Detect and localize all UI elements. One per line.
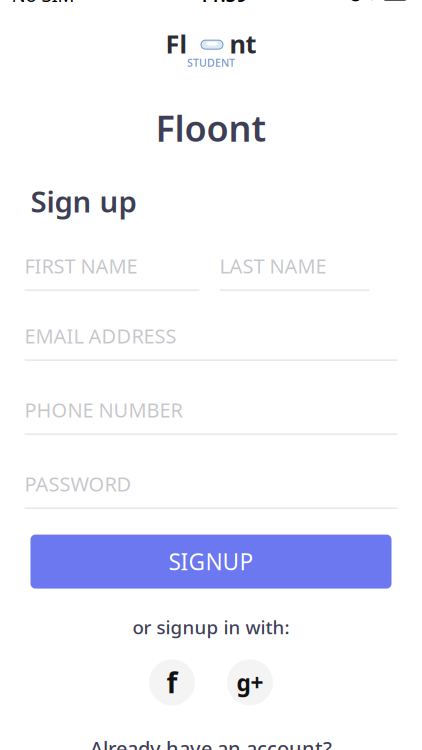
staticText: 11:59 [198, 0, 247, 7]
staticText: No SIM [11, 0, 74, 7]
staticText: Floont [155, 104, 266, 152]
staticText: PHONE NUMBER [24, 397, 182, 423]
staticText: f [166, 664, 177, 701]
staticText: EMAIL ADDRESS [24, 323, 176, 349]
staticText: PASSWORD [24, 471, 131, 497]
staticText: STUDENT [187, 56, 235, 70]
button[interactable]: SIGNUP [30, 535, 391, 589]
staticText: Fl nt [165, 27, 256, 60]
staticText: Already have an account? [90, 735, 332, 750]
staticText: g+ [236, 667, 263, 697]
staticText: Sign up [30, 182, 136, 221]
button[interactable]: Already have an account? [0, 733, 422, 750]
button[interactable]: Sign up with Facebook [149, 659, 195, 705]
staticText: SIGNUP [168, 546, 253, 577]
staticText: FIRST NAME [24, 253, 137, 279]
button[interactable]: Sign up with Google [227, 659, 273, 705]
staticText: LAST NAME [219, 253, 326, 279]
staticText: or signup in with: [132, 615, 289, 639]
